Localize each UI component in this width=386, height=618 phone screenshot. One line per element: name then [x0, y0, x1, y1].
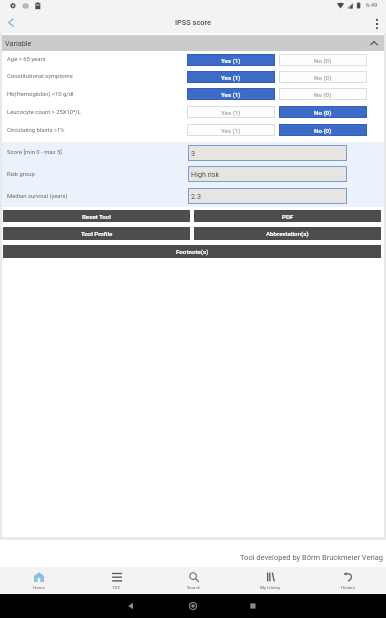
- button[interactable]: No (0): [279, 71, 367, 83]
- staticText: Tool developed by Börm Bruckmeier Verlag: [240, 553, 384, 562]
- button[interactable]: No (0): [279, 124, 367, 136]
- button[interactable]: Yes (1): [187, 54, 275, 66]
- button[interactable]: Reset Tool: [3, 210, 190, 222]
- staticText: No (0): [314, 127, 332, 134]
- staticText: No (0): [314, 109, 332, 116]
- button[interactable]: Tool Profile: [3, 227, 190, 240]
- button[interactable]: No (0): [279, 54, 367, 66]
- staticText: Leucocyte count > 25X10⁹/L: [7, 109, 187, 116]
- button[interactable]: PDF: [194, 210, 381, 222]
- button[interactable]: Yes (1): [187, 88, 275, 100]
- staticText: Yes (1): [221, 109, 241, 116]
- staticText: IPSS score: [175, 18, 211, 27]
- button[interactable]: History: [309, 567, 386, 594]
- staticText: No (0): [314, 91, 332, 98]
- button[interactable]: No (0): [279, 106, 367, 118]
- staticText: History: [341, 585, 355, 590]
- staticText: PDF: [282, 213, 294, 220]
- staticText: Search: [187, 585, 201, 590]
- button[interactable]: Yes (1): [187, 71, 275, 83]
- button[interactable]: Variable: [2, 35, 384, 51]
- staticText: High risk: [191, 170, 220, 178]
- button[interactable]: Home: [0, 567, 78, 594]
- button[interactable]: Footnote(s): [3, 245, 381, 258]
- staticText: Circulating blasts >1%: [7, 127, 187, 134]
- staticText: Tool Profile: [81, 230, 113, 237]
- button[interactable]: TOC: [78, 567, 155, 594]
- staticText: Home: [33, 585, 45, 590]
- staticText: Yes (1): [221, 57, 241, 64]
- button[interactable]: Yes (1): [187, 124, 275, 136]
- staticText: Yes (1): [221, 127, 241, 134]
- staticText: Reset Tool: [82, 213, 111, 220]
- staticText: Risk group: [7, 171, 188, 178]
- button[interactable]: More options: [368, 14, 386, 33]
- button[interactable]: Back: [0, 14, 22, 33]
- staticText: Constitutional symptoms: [7, 73, 187, 80]
- staticText: No (0): [314, 57, 332, 64]
- button[interactable]: Search: [155, 567, 232, 594]
- staticText: Yes (1): [221, 91, 241, 98]
- staticText: 2.3: [191, 192, 201, 200]
- staticText: Variable: [5, 39, 32, 48]
- staticText: Age > 65 years: [7, 56, 187, 63]
- staticText: My Library: [260, 585, 281, 590]
- staticText: Hb(Hemoglobin) <10 g/dl: [7, 91, 187, 98]
- button[interactable]: My Library: [232, 567, 309, 594]
- staticText: 6:49: [366, 2, 378, 9]
- button[interactable]: Abbreviation(s): [194, 227, 381, 240]
- button[interactable]: Yes (1): [187, 106, 275, 118]
- staticText: Abbreviation(s): [266, 230, 309, 237]
- staticText: No (0): [314, 74, 332, 81]
- staticText: TOC: [112, 585, 121, 590]
- staticText: Yes (1): [221, 74, 241, 81]
- staticText: Footnote(s): [176, 248, 209, 255]
- staticText: 3: [191, 149, 196, 157]
- staticText: Median survival (years): [7, 193, 188, 200]
- button[interactable]: No (0): [279, 88, 367, 100]
- staticText: Score [min 0 - max 5]: [7, 149, 188, 156]
